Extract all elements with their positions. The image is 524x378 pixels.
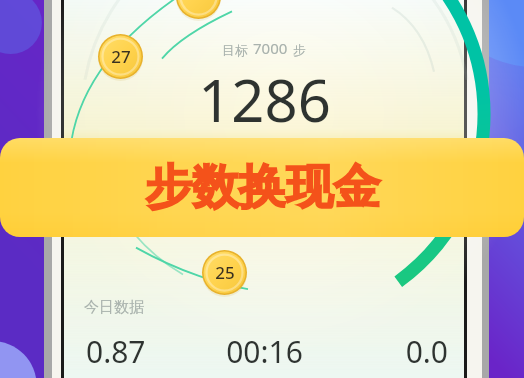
button[interactable]: 00:16 <box>198 331 331 372</box>
button[interactable]: Coin <box>176 0 221 19</box>
staticText: 00:16 <box>198 331 331 372</box>
button[interactable]: Coin 27 <box>98 34 143 79</box>
staticText: 0.0 <box>331 331 448 372</box>
staticText: 目标 <box>222 42 248 58</box>
button[interactable]: Coin 25 <box>202 250 247 295</box>
staticText: 7000 <box>253 38 288 58</box>
button[interactable]: 0.0 <box>331 331 464 372</box>
staticText: 步数换现金 <box>145 158 380 217</box>
button[interactable]: 步数换现金 <box>0 138 524 237</box>
staticText: 1286 <box>198 60 331 139</box>
staticText: 步 <box>293 42 306 58</box>
staticText: 今日数据 <box>84 298 144 317</box>
staticText: 0.87 <box>86 331 198 372</box>
staticText: 25 <box>215 261 235 284</box>
staticText: 27 <box>111 45 131 68</box>
button[interactable]: 0.87 <box>64 331 198 372</box>
